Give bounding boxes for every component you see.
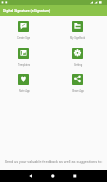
button[interactable]: Create Sign (6, 19, 40, 40)
button[interactable]: Share App (60, 72, 94, 93)
button[interactable]: Back (20, 170, 42, 182)
button[interactable]: Note App (6, 72, 40, 93)
staticText: Send us your valuable feedback as well a… (0, 159, 107, 163)
staticText: Digital Signature (eSignature) (3, 9, 51, 13)
button[interactable]: My SignBook (60, 19, 94, 40)
staticText: Setting (74, 64, 83, 67)
staticText: Create Sign (17, 37, 31, 40)
button[interactable]: Recent apps (64, 170, 86, 182)
staticText: Share App (72, 90, 84, 93)
button[interactable]: Home (42, 170, 64, 182)
staticText: Templates (18, 64, 31, 67)
staticText: My SignBook (70, 37, 86, 40)
button[interactable]: Templates (6, 46, 40, 67)
staticText: Note App (19, 90, 30, 93)
button[interactable]: Setting (60, 46, 94, 67)
